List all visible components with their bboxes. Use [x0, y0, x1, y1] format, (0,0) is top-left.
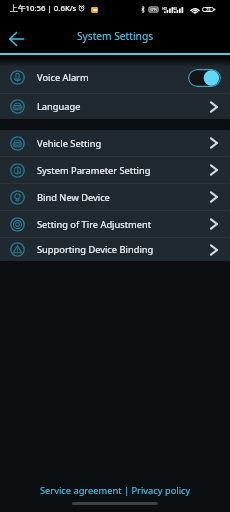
staticText: Vehicle Setting [37, 137, 102, 150]
staticText: 73 [206, 7, 211, 12]
staticText: Voice Alarm [37, 71, 89, 84]
staticText: HD [162, 6, 167, 11]
button[interactable]: Voice Alarm [0, 62, 230, 93]
staticText: Language [37, 100, 81, 113]
staticText: 上午10:56 | 0.6K/s [10, 3, 77, 14]
staticText: System Parameter Setting [37, 164, 151, 177]
staticText: HD [172, 6, 177, 11]
button[interactable]: Service agreement | Privacy policy [40, 484, 191, 497]
staticText: Supporting Device Binding [37, 243, 154, 256]
button[interactable]: Bind New Device [0, 184, 230, 210]
button[interactable]: Back [4, 27, 28, 51]
button[interactable]: Vehicle Setting [0, 130, 230, 156]
staticText: Setting of Tire Adjustment [37, 218, 152, 231]
button[interactable]: Language [0, 94, 230, 119]
button[interactable]: Supporting Device Binding [0, 238, 230, 261]
staticText: System Settings [77, 29, 154, 43]
staticText: VPN [150, 7, 158, 12]
button[interactable]: System Parameter Setting [0, 157, 230, 183]
button[interactable]: Voice Alarm toggle [188, 69, 221, 87]
button[interactable]: Setting of Tire Adjustment [0, 211, 230, 237]
staticText: Bind New Device [37, 191, 110, 204]
